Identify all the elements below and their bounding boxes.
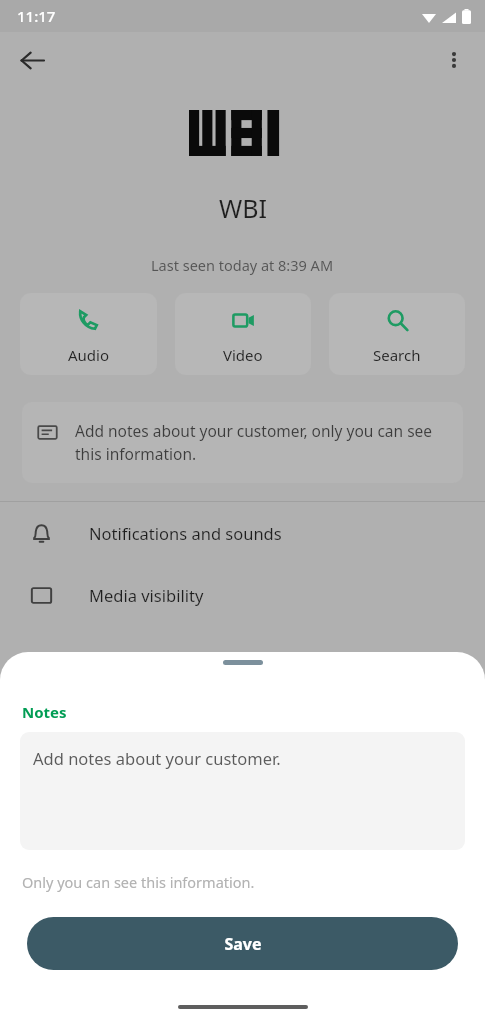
button[interactable]: More options	[432, 38, 476, 82]
button[interactable]: Search	[329, 293, 465, 375]
button[interactable]: Notifications and sounds	[0, 502, 485, 564]
staticText: 11:17	[17, 6, 56, 26]
staticText: Audio	[68, 345, 110, 365]
staticText: Save	[224, 933, 262, 955]
button[interactable]: Video	[175, 293, 311, 375]
staticText: WBI	[219, 191, 267, 225]
button[interactable]: Audio	[20, 293, 157, 375]
button[interactable]: Back	[8, 36, 56, 84]
staticText: Only you can see this information.	[22, 872, 255, 892]
button[interactable]: Add notes about your customer, only you …	[22, 402, 463, 483]
staticText: Last seen today at 8:39 AM	[151, 255, 334, 275]
button[interactable]: Save	[27, 917, 458, 970]
staticText: Notes	[22, 702, 67, 722]
staticText: Add notes about your customer, only you …	[75, 420, 448, 465]
button[interactable]: Add notes about your customer.	[20, 732, 465, 850]
button[interactable]: Media visibility	[0, 564, 485, 626]
staticText: Video	[223, 345, 263, 365]
staticText: Add notes about your customer.	[33, 747, 281, 769]
staticText: Notifications and sounds	[89, 522, 282, 544]
staticText: Media visibility	[89, 584, 204, 606]
staticText: Search	[373, 345, 421, 365]
